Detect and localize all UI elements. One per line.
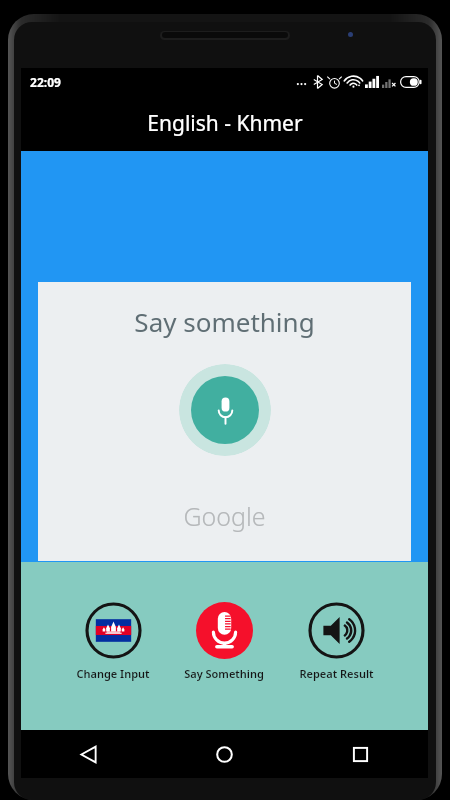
button[interactable]: Change Input language [72,600,154,683]
staticText: Change Input [76,666,150,681]
staticText: Repeat Result [299,666,374,681]
button[interactable]: Back [21,730,156,778]
button[interactable]: Repeat Result [295,600,378,683]
button[interactable]: Start voice input [179,364,271,456]
button[interactable]: Home [156,730,292,778]
staticText: Say something [134,304,315,339]
staticText: Google [183,499,266,533]
button[interactable]: Say Something [180,600,268,683]
button[interactable]: Recent apps [292,730,428,778]
staticText: Say Something [184,666,264,681]
staticText: 22:09 [30,74,61,90]
staticText: English - Khmer [147,109,303,138]
